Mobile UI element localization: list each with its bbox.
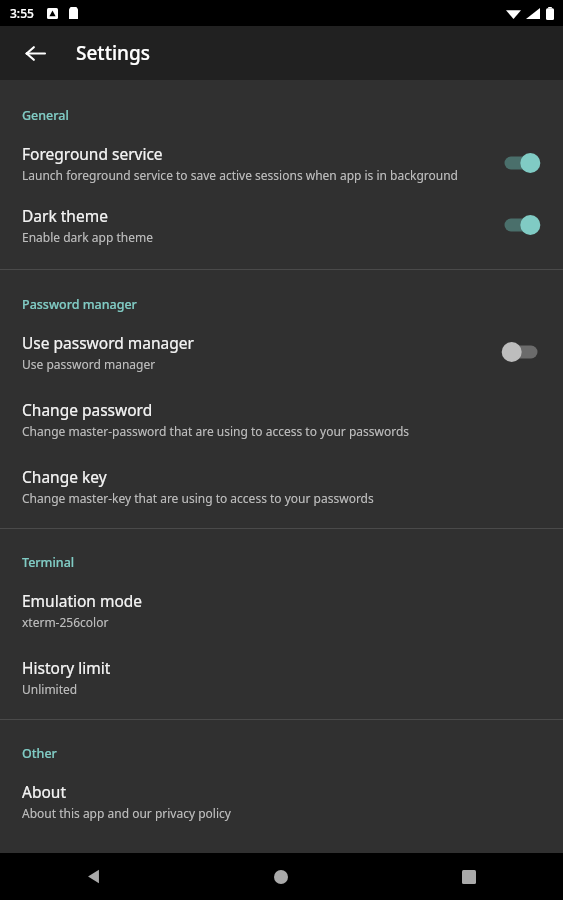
staticText: History limit xyxy=(22,657,111,678)
staticText: Launch foreground service to save active… xyxy=(22,167,458,183)
button[interactable]: Home xyxy=(187,853,375,900)
button[interactable]: Toggle on xyxy=(499,150,543,176)
staticText: Emulation mode xyxy=(22,590,143,611)
staticText: Change password xyxy=(22,399,153,420)
button[interactable]: Change password xyxy=(0,399,563,439)
button[interactable]: Change key xyxy=(0,466,563,506)
button[interactable]: Toggle on xyxy=(499,212,543,238)
staticText: General xyxy=(22,107,69,124)
button[interactable]: Back xyxy=(14,32,56,74)
button[interactable]: History limit xyxy=(0,657,563,697)
button[interactable]: About xyxy=(0,781,563,821)
staticText: Change key xyxy=(22,466,107,487)
button[interactable]: Dark theme xyxy=(0,205,563,245)
staticText: About xyxy=(22,781,66,802)
staticText: Dark theme xyxy=(22,205,108,226)
button[interactable]: Recent apps xyxy=(375,853,563,900)
staticText: Unlimited xyxy=(22,681,78,697)
staticText: Enable dark app theme xyxy=(22,229,153,245)
button[interactable]: Foreground service xyxy=(0,143,563,183)
staticText: Use password manager xyxy=(22,356,156,372)
staticText: 3:55 xyxy=(10,5,34,21)
staticText: Settings xyxy=(76,40,150,66)
staticText: Foreground service xyxy=(22,143,163,164)
button[interactable]: Back xyxy=(0,853,187,900)
staticText: Password manager xyxy=(22,296,137,313)
staticText: Use password manager xyxy=(22,332,194,353)
staticText: Change master-key that are using to acce… xyxy=(22,490,374,506)
button[interactable]: Use password manager xyxy=(0,332,563,372)
button[interactable]: Toggle off xyxy=(499,339,543,365)
staticText: Other xyxy=(22,745,57,762)
staticText: xterm-256color xyxy=(22,614,109,630)
staticText: About this app and our privacy policy xyxy=(22,805,231,821)
button[interactable]: Emulation mode xyxy=(0,590,563,630)
staticText: Terminal xyxy=(22,554,75,571)
staticText: Change master-password that are using to… xyxy=(22,423,410,439)
